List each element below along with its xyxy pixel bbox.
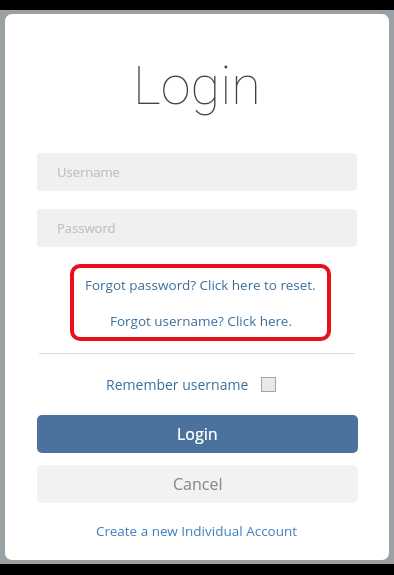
button[interactable]: Login — [37, 415, 358, 453]
staticText: Cancel — [173, 473, 223, 495]
button[interactable]: Create a new Individual Account — [96, 522, 298, 540]
staticText: Login — [133, 54, 261, 117]
button[interactable]: Password — [37, 209, 357, 247]
button[interactable]: Username — [37, 153, 357, 191]
staticText: Remember username — [106, 375, 249, 394]
button[interactable]: Forgot password? Click here to reset. — [85, 276, 316, 294]
staticText: Login — [177, 423, 218, 445]
button[interactable]: Remember username — [106, 375, 276, 394]
staticText: Password — [57, 219, 116, 237]
staticText: Username — [57, 163, 120, 181]
button[interactable]: Cancel — [37, 465, 358, 503]
button[interactable]: Forgot username? Click here. — [110, 312, 292, 330]
